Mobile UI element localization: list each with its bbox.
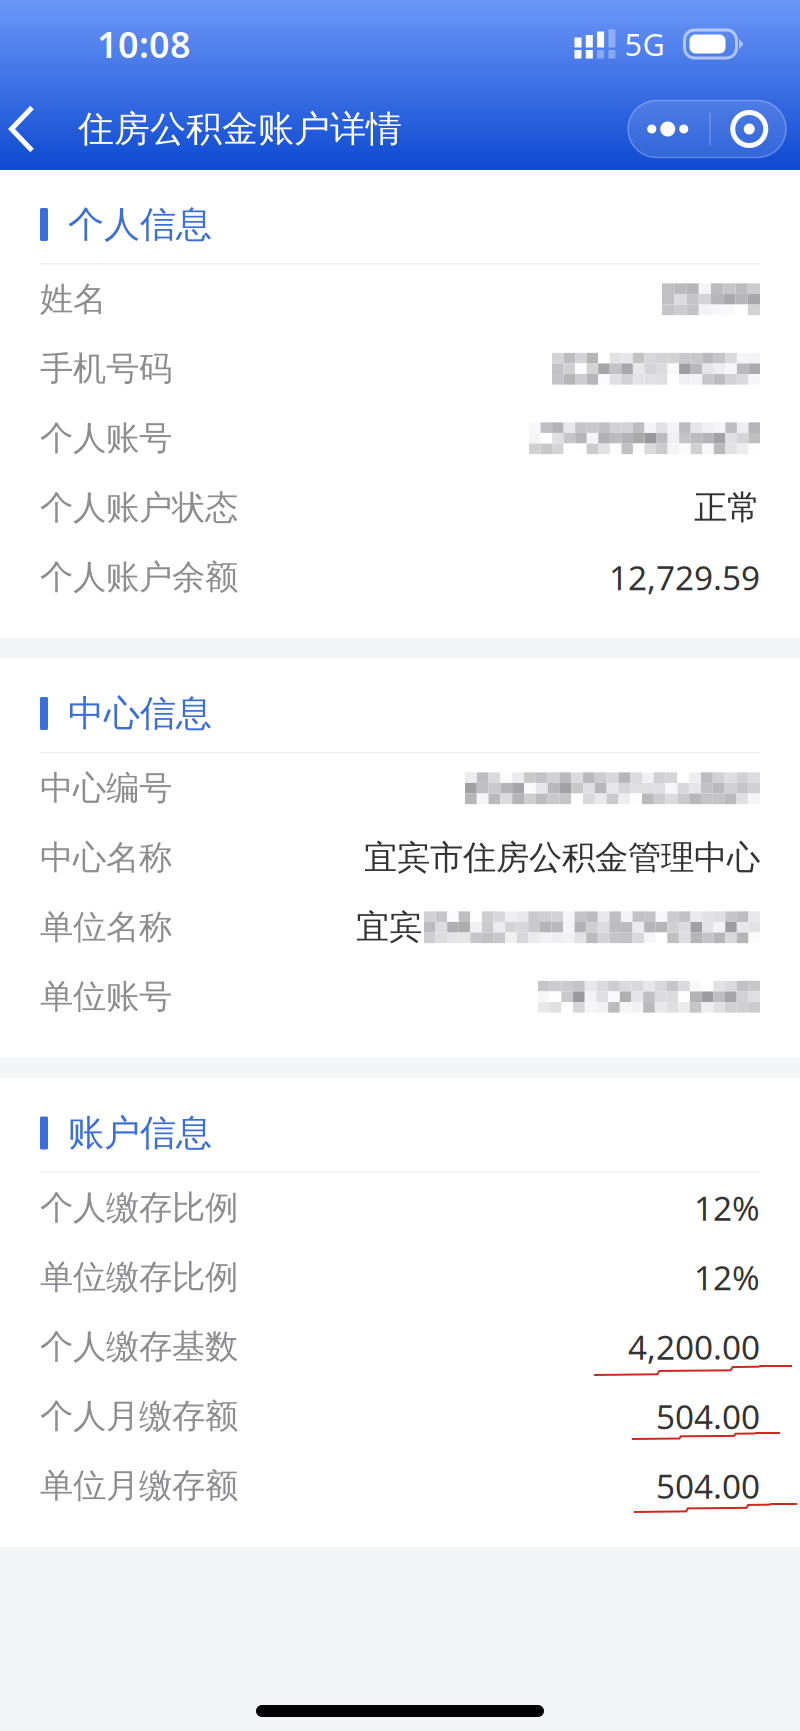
staticText: 单位账号 xyxy=(40,976,172,1017)
staticText: 个人缴存比例 xyxy=(40,1187,238,1228)
staticText: 宜宾市住房公积金管理中心 xyxy=(364,837,760,878)
staticText: 姓名 xyxy=(40,279,106,320)
staticText: 单位缴存比例 xyxy=(40,1257,238,1298)
staticText: 504.00 xyxy=(656,1394,760,1438)
staticText: 个人月缴存额 xyxy=(40,1396,238,1437)
staticText: 个人账号 xyxy=(40,418,172,459)
staticText: 账户信息 xyxy=(68,1111,212,1155)
staticText: 中心名称 xyxy=(40,837,172,878)
staticText: 5G xyxy=(624,24,664,64)
staticText: 中心信息 xyxy=(68,691,212,736)
staticText: 4,200.00 xyxy=(628,1325,760,1369)
staticText: 12% xyxy=(694,1186,760,1230)
staticText: 手机号码 xyxy=(40,348,172,389)
button[interactable]: Back xyxy=(0,88,78,170)
staticText: 个人账户状态 xyxy=(40,487,238,528)
staticText: 12,729.59 xyxy=(609,555,760,599)
staticText: 504.00 xyxy=(656,1464,760,1508)
staticText: 个人缴存基数 xyxy=(40,1326,238,1367)
button[interactable]: More options xyxy=(628,100,786,157)
staticText: 中心编号 xyxy=(40,768,172,809)
staticText: 正常 xyxy=(694,487,760,528)
staticText: 单位名称 xyxy=(40,907,172,948)
staticText: 住房公积金账户详情 xyxy=(78,107,402,151)
staticText: 12% xyxy=(694,1255,760,1299)
staticText: 10:08 xyxy=(97,20,191,68)
staticText: 宜宾 xyxy=(356,907,422,948)
staticText: 个人信息 xyxy=(68,202,212,247)
staticText: 个人账户余额 xyxy=(40,557,238,598)
staticText: 单位月缴存额 xyxy=(40,1465,238,1506)
